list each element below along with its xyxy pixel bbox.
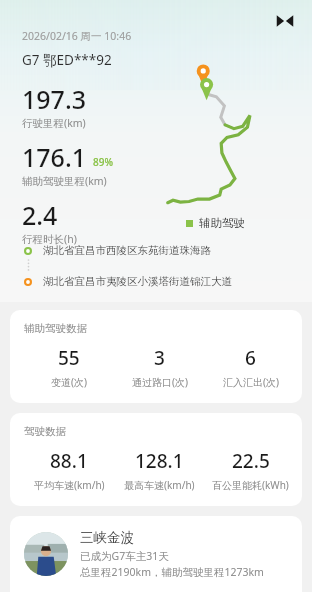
staticText: 55	[58, 345, 80, 371]
staticText: 行程时长(h)	[22, 232, 77, 246]
staticText: 176.1	[22, 140, 87, 174]
staticText: 总里程2190km，辅助驾驶里程1273km	[80, 565, 264, 579]
staticText: G7 鄂ED***92	[22, 51, 112, 69]
staticText: 平均车速(km/h)	[34, 478, 105, 492]
button[interactable]: 三峡金波	[10, 516, 302, 592]
staticText: 变道(次)	[51, 375, 87, 389]
button[interactable]: Collapse	[270, 6, 300, 36]
staticText: 辅助驾驶数据	[24, 322, 87, 335]
staticText: 通过路口(次)	[132, 375, 188, 389]
button[interactable]: 驾驶数据	[10, 413, 302, 506]
staticText: 百公里能耗(kWh)	[212, 478, 289, 492]
staticText: 行驶里程(km)	[22, 116, 86, 130]
staticText: 驾驶数据	[24, 425, 66, 438]
staticText: 辅助驾驶里程(km)	[22, 174, 107, 188]
staticText: 辅助驾驶	[199, 216, 245, 230]
button[interactable]: 辅助驾驶数据	[10, 310, 302, 403]
staticText: 湖北省宜昌市夷陵区小溪塔街道锦江大道	[43, 275, 232, 288]
staticText: 197.3	[22, 82, 87, 116]
staticText: 89%	[93, 155, 113, 169]
staticText: 最高车速(km/h)	[124, 478, 195, 492]
staticText: 6	[245, 345, 256, 371]
staticText: 湖北省宜昌市西陵区东苑街道珠海路	[43, 244, 211, 257]
staticText: 88.1	[50, 448, 88, 474]
staticText: 汇入汇出(次)	[223, 375, 279, 389]
staticText: 22.5	[232, 448, 270, 474]
staticText: 三峡金波	[80, 529, 134, 546]
staticText: 已成为G7车主31天	[80, 549, 169, 563]
staticText: 2026/02/16 周一 10:46	[22, 29, 132, 43]
staticText: 3	[154, 345, 165, 371]
staticText: 128.1	[135, 448, 184, 474]
staticText: 2.4	[22, 198, 58, 232]
